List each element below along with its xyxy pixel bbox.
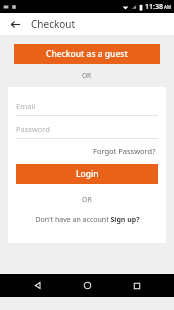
- staticText: 11:38: [145, 2, 163, 12]
- staticText: Don't have an account Sign up?: [35, 215, 140, 225]
- staticText: Password: [16, 124, 50, 134]
- staticText: Email: [16, 101, 36, 111]
- button[interactable]: Password: [16, 124, 158, 139]
- staticText: Login: [76, 168, 99, 180]
- button[interactable]: Recents: [124, 274, 150, 297]
- staticText: Checkout: [31, 17, 76, 31]
- button[interactable]: Login: [16, 164, 158, 184]
- staticText: Forgot Password?: [93, 146, 156, 156]
- button[interactable]: Forgot Password?: [91, 144, 158, 158]
- button[interactable]: Checkout as a guest: [14, 44, 160, 64]
- button[interactable]: Email: [16, 101, 158, 116]
- staticText: Checkout as a guest: [46, 48, 128, 60]
- button[interactable]: Back: [6, 15, 24, 33]
- staticText: OR: [82, 71, 92, 80]
- button[interactable]: Home: [74, 274, 100, 297]
- button[interactable]: Back: [24, 274, 50, 297]
- staticText: AM: [164, 4, 171, 10]
- button[interactable]: Don't have an account Sign up?: [8, 215, 166, 225]
- staticText: OR: [82, 195, 92, 205]
